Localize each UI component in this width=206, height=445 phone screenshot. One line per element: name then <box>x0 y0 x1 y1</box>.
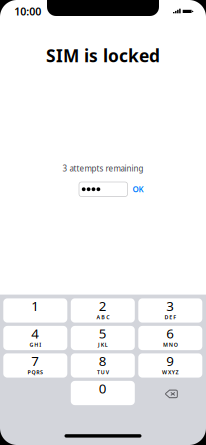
staticText: SIM is locked <box>46 44 160 67</box>
button[interactable]: 2 <box>71 298 135 323</box>
button[interactable]: 9 <box>138 353 202 378</box>
staticText: 6 <box>166 324 174 342</box>
button[interactable]: 5 <box>71 326 135 350</box>
staticText: 2 <box>99 297 107 315</box>
staticText: 1 <box>31 297 39 315</box>
staticText: JKL <box>98 341 108 348</box>
staticText: 4 <box>31 324 39 342</box>
staticText: OK <box>132 184 143 194</box>
staticText: 5 <box>99 324 107 342</box>
button[interactable]: 7 <box>3 353 67 378</box>
staticText: 9 <box>166 352 174 370</box>
staticText: 3 <box>166 297 174 315</box>
staticText: MNO <box>163 341 178 348</box>
button[interactable]: 0 <box>71 381 135 405</box>
staticText: GHI <box>29 341 41 348</box>
button[interactable]: OK <box>127 182 149 196</box>
staticText: 8 <box>99 352 107 370</box>
staticText: 10:00 <box>14 4 41 19</box>
staticText: ABC <box>96 314 109 321</box>
button[interactable]: 3 <box>138 298 202 323</box>
staticText: 7 <box>31 352 39 370</box>
staticText: DEF <box>164 314 176 321</box>
button[interactable]: 4 <box>3 326 67 350</box>
staticText: TUV <box>97 369 109 376</box>
staticText: PQRS <box>27 369 43 376</box>
button[interactable]: 8 <box>71 353 135 378</box>
staticText: 0 <box>99 379 107 397</box>
staticText: WXYZ <box>162 369 178 376</box>
button[interactable]: 6 <box>138 326 202 350</box>
button[interactable]: 1 <box>3 298 67 323</box>
button[interactable]: Delete <box>138 381 202 405</box>
staticText: 3 attempts remaining <box>62 163 143 174</box>
